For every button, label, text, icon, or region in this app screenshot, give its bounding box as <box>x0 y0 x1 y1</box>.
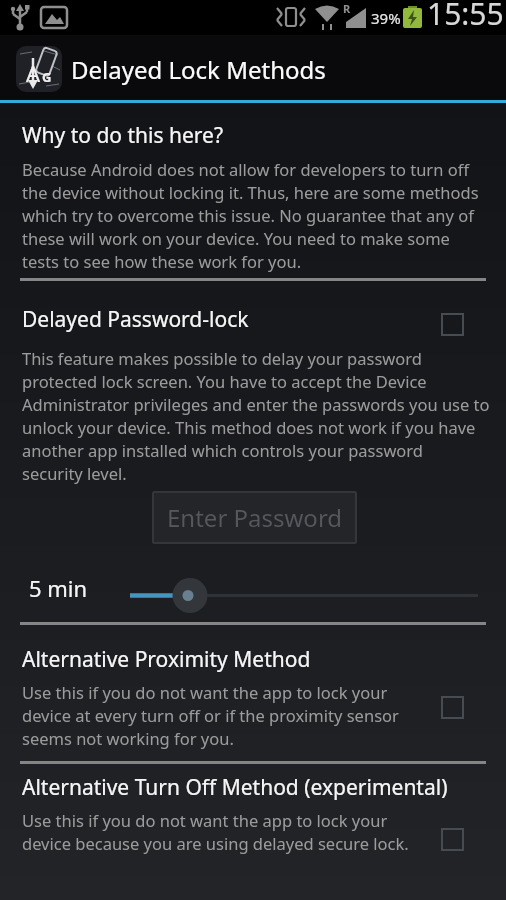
button[interactable] <box>428 683 476 731</box>
button[interactable]: A <box>16 46 62 92</box>
staticText: Because Android does not allow for devel… <box>22 158 479 273</box>
staticText: Alternative Turn Off Method (experimenta… <box>22 773 448 802</box>
staticText: G <box>42 68 52 86</box>
staticText: This feature makes possible to delay you… <box>22 347 490 485</box>
staticText: Use this if you do not want the app to l… <box>22 681 399 750</box>
staticText: R <box>343 1 351 16</box>
button[interactable] <box>428 300 476 348</box>
button[interactable] <box>120 570 490 620</box>
staticText: 15:55 <box>427 0 504 34</box>
staticText: 39% <box>371 8 401 28</box>
button[interactable] <box>428 815 476 863</box>
staticText: 5 min <box>29 573 88 603</box>
staticText: A <box>26 58 41 88</box>
staticText: Alternative Proximity Method <box>22 645 311 674</box>
staticText: Delayed Lock Methods <box>71 53 326 86</box>
staticText: Why to do this here? <box>22 121 224 150</box>
staticText: Enter Password <box>167 501 343 534</box>
staticText: Delayed Password-lock <box>22 305 249 334</box>
staticText: Use this if you do not want the app to l… <box>22 809 409 855</box>
button[interactable]: Enter Password <box>152 491 357 544</box>
